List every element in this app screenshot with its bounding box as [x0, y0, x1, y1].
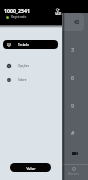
staticText: Sobre — [18, 78, 27, 82]
staticText: SAIR — [55, 12, 62, 16]
button[interactable]: Sobre — [3, 75, 58, 84]
staticText: 9 — [71, 102, 75, 109]
staticText: Voltar — [26, 166, 36, 170]
staticText: # — [71, 129, 75, 136]
button[interactable]: Voltar — [10, 163, 51, 172]
button[interactable]: 6 — [64, 64, 88, 90]
button[interactable]: Sair — [53, 8, 63, 16]
staticText: 3 — [71, 46, 75, 53]
button[interactable]: Opções — [3, 61, 58, 70]
staticText: Opções — [18, 64, 29, 68]
button[interactable]: Backspace — [44, 13, 84, 31]
other: Recentes — [72, 167, 76, 171]
staticText: Registrado — [11, 15, 27, 19]
staticText: Teclado — [18, 43, 30, 47]
button[interactable]: Backspace — [74, 20, 79, 24]
button[interactable]: Recentes — [67, 167, 80, 175]
staticText: Recentes — [68, 172, 80, 176]
button[interactable]: Video call — [66, 145, 84, 161]
button[interactable]: # — [64, 119, 88, 145]
staticText: 1000_2541 — [4, 7, 30, 14]
button[interactable]: Teclado — [3, 40, 58, 49]
button[interactable]: 9 — [64, 92, 88, 118]
staticText: 6 — [71, 74, 75, 81]
button[interactable]: 3 — [64, 36, 88, 62]
